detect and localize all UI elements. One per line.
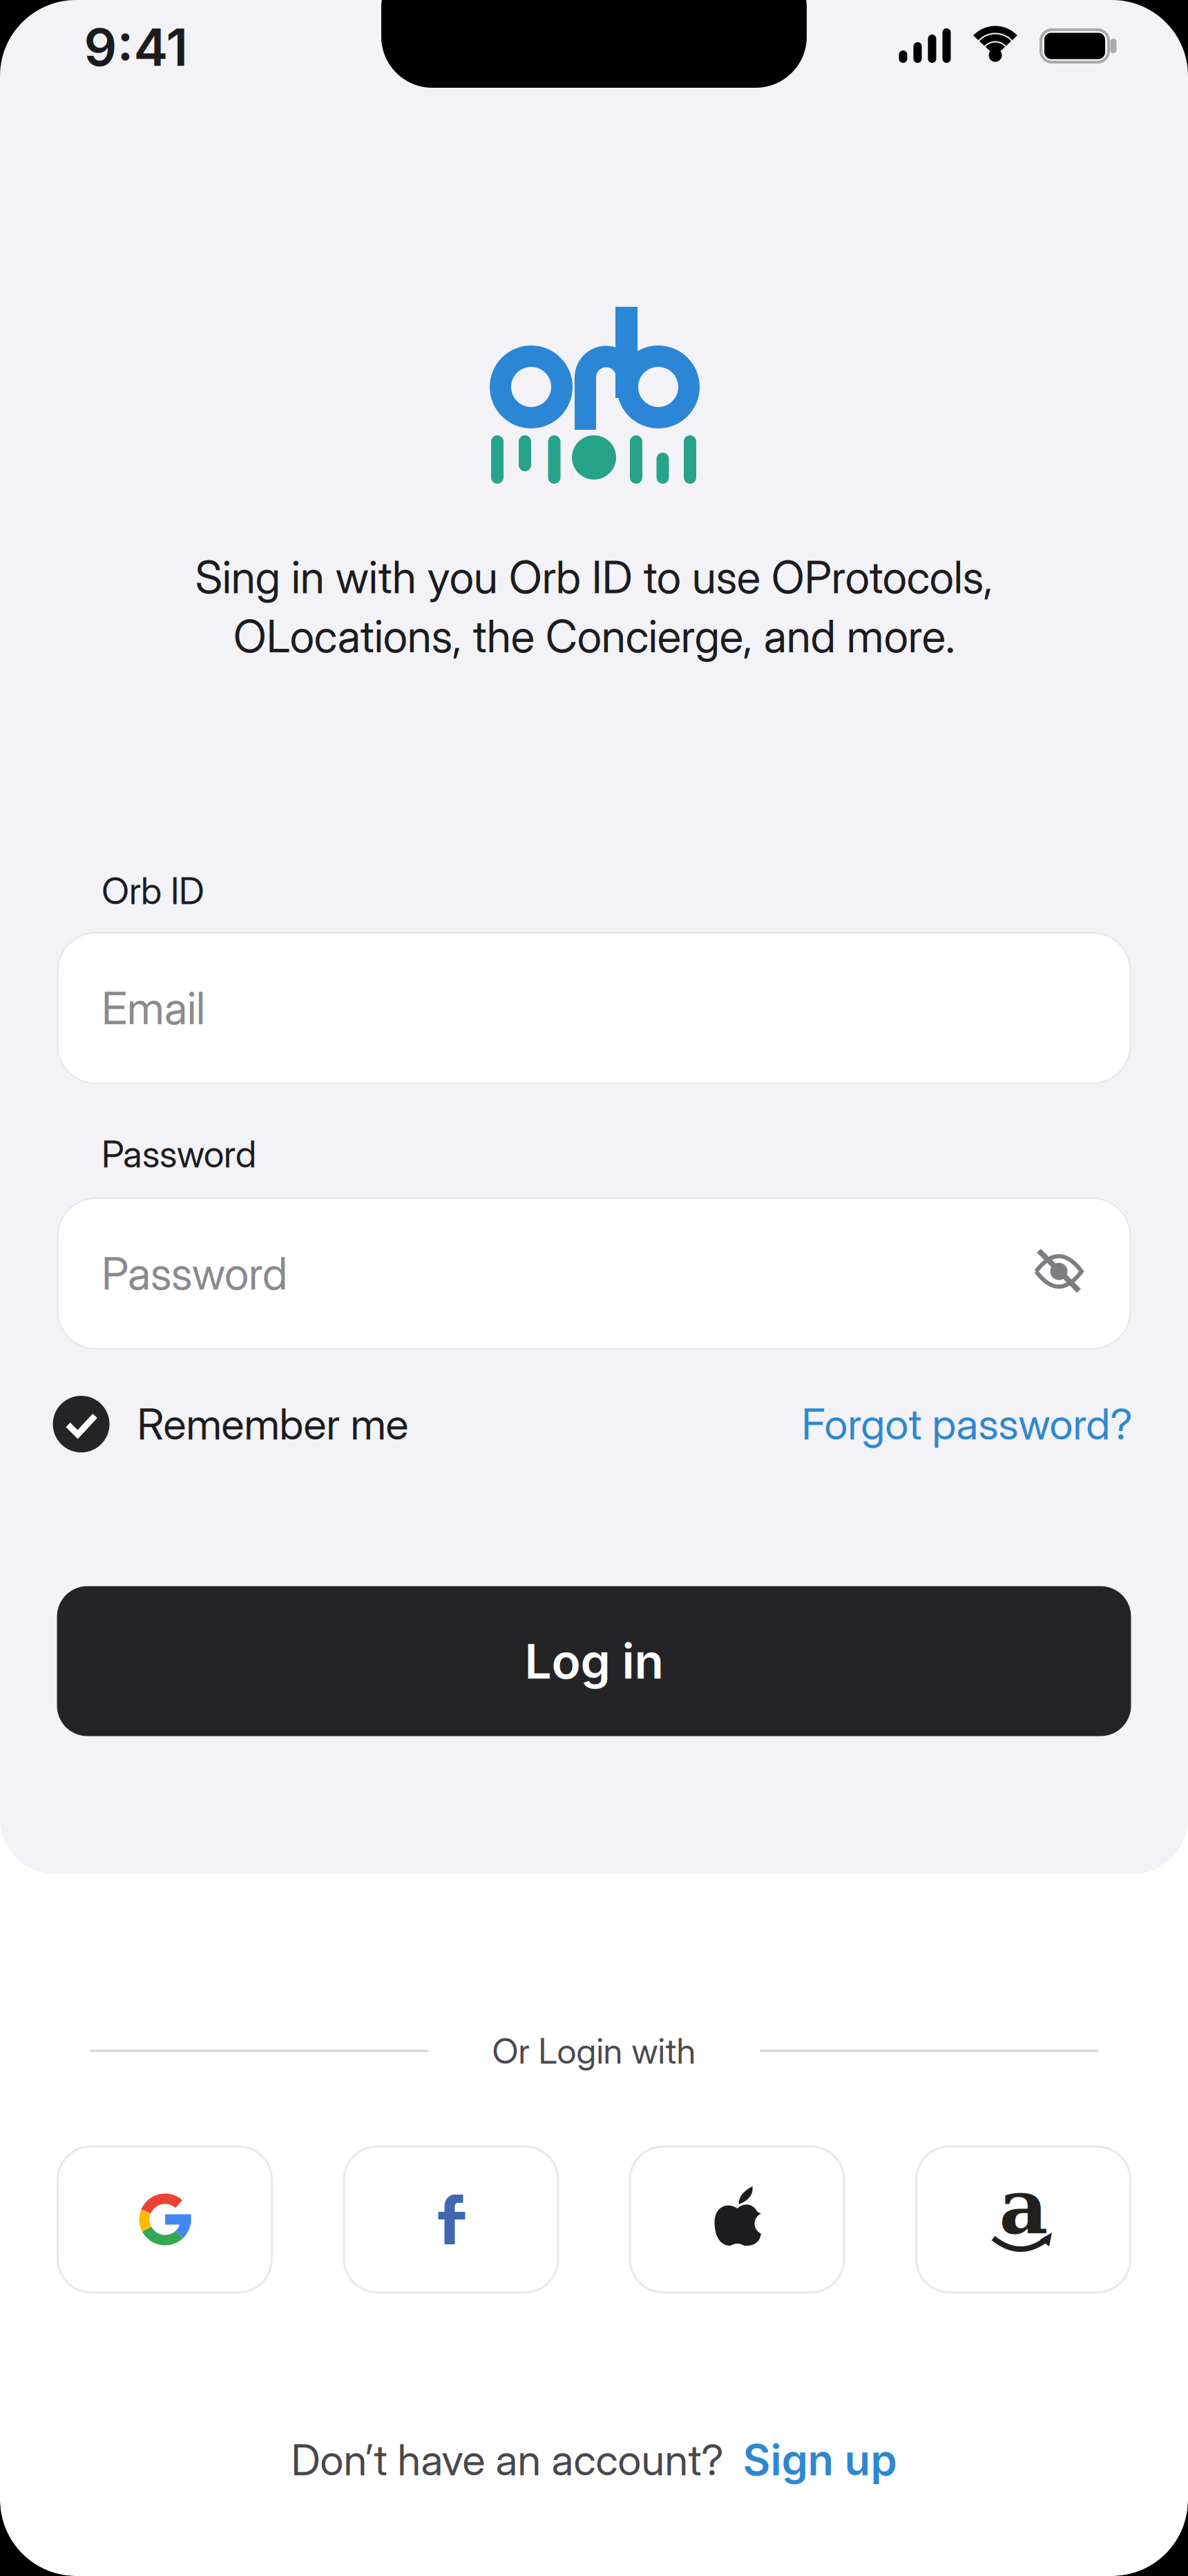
button[interactable]: Sign in with Amazon <box>915 2146 1131 2293</box>
staticText: Log in <box>525 1632 663 1690</box>
staticText: Or Login with <box>492 2030 696 2072</box>
button[interactable]: Forgot password? <box>802 1398 1132 1450</box>
button[interactable]: Sign in with Apple <box>629 2146 845 2293</box>
button[interactable]: Sign in with Facebook <box>343 2146 559 2293</box>
staticText: Remember me <box>137 1398 409 1450</box>
staticText: a <box>999 2162 1048 2251</box>
button[interactable]: Show password <box>1021 1233 1097 1309</box>
staticText: Password <box>102 1132 256 1176</box>
staticText: Don’t have an account? <box>291 2434 724 2486</box>
staticText: 9:41 <box>84 16 188 78</box>
button[interactable]: Log in <box>57 1586 1131 1736</box>
staticText: Forgot password? <box>802 1398 1132 1450</box>
staticText: Orb ID <box>102 868 204 913</box>
button[interactable]: Sign in with Google <box>57 2146 273 2293</box>
staticText: Password <box>102 1247 287 1300</box>
staticText: Sing in with you Orb ID to use OProtocol… <box>195 550 993 663</box>
staticText: Email <box>102 981 205 1035</box>
button[interactable]: Remember me <box>53 1396 409 1452</box>
button[interactable]: Sign up <box>743 2434 897 2486</box>
staticText: Sign up <box>743 2434 897 2486</box>
